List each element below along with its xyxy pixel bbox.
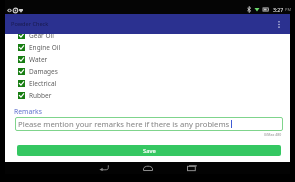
- button[interactable]: Rubber: [5, 89, 290, 101]
- button[interactable]: Please mention your remarks here if ther…: [15, 117, 283, 131]
- staticText: Powder Check: [11, 20, 49, 28]
- staticText: PM: [285, 7, 292, 12]
- button[interactable]: Recents: [175, 162, 208, 174]
- staticText: Engine Oil: [29, 43, 61, 52]
- button[interactable]: Save: [17, 145, 281, 156]
- button[interactable]: Back: [87, 162, 120, 174]
- staticText: 3:27: [273, 6, 284, 13]
- staticText: Remarks: [14, 107, 42, 116]
- button[interactable]: Gear Oil: [5, 34, 290, 41]
- button[interactable]: More options: [273, 18, 285, 30]
- staticText: Damages: [29, 67, 58, 76]
- button[interactable]: Engine Oil: [5, 41, 290, 53]
- staticText: Gear Oil: [29, 34, 54, 40]
- staticText: Please mention your remarks here if ther…: [18, 119, 230, 129]
- staticText: Water: [29, 55, 48, 64]
- staticText: Rubber: [29, 91, 52, 100]
- staticText: 0/Max 480: [264, 132, 282, 137]
- button[interactable]: Damages: [5, 65, 290, 77]
- button[interactable]: Home: [131, 162, 164, 174]
- staticText: Save: [143, 147, 156, 155]
- staticText: Electrical: [29, 79, 57, 88]
- button[interactable]: Water: [5, 53, 290, 65]
- button[interactable]: Electrical: [5, 77, 290, 89]
